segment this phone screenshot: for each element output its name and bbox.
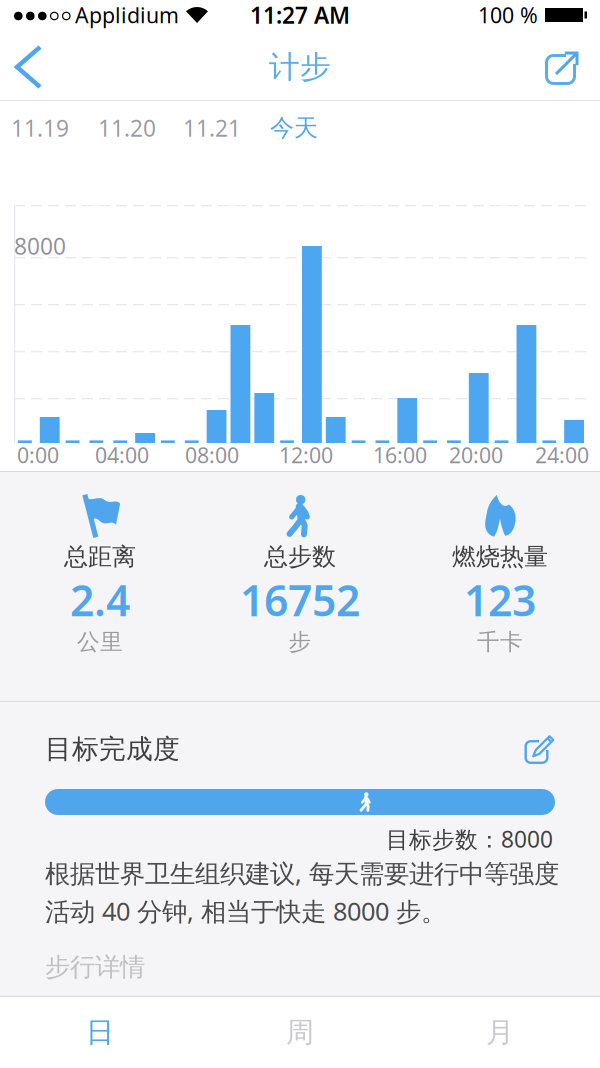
staticText: 总距离	[64, 542, 136, 571]
staticText: 公里	[77, 628, 123, 656]
staticText: 活动 40 分钟, 相当于快走 8000 步。	[45, 894, 446, 928]
button[interactable]: 月	[400, 997, 600, 1068]
button[interactable]: 11.20	[98, 107, 156, 149]
staticText: 千卡	[477, 628, 523, 656]
staticText: 16752	[240, 571, 360, 628]
button[interactable]: 周	[200, 997, 400, 1068]
button[interactable]: Back	[0, 34, 40, 100]
button[interactable]: 今天	[270, 107, 318, 149]
staticText: 根据世界卫生组织建议, 每天需要进行中等强度	[45, 856, 559, 890]
button[interactable]: Edit goal	[523, 731, 559, 765]
staticText: 计步	[269, 48, 331, 86]
staticText: 8000	[14, 231, 66, 261]
staticText: 日	[86, 1015, 114, 1050]
staticText: 12:00	[279, 441, 333, 469]
staticText: 目标完成度	[45, 733, 180, 765]
staticText: 08:00	[185, 441, 239, 469]
staticText: 123	[464, 571, 536, 628]
staticText: 总步数	[264, 542, 336, 571]
staticText: Applidium	[75, 1, 179, 29]
button[interactable]: 11.19	[11, 107, 69, 149]
staticText: 04:00	[95, 441, 149, 469]
button[interactable]: 11.21	[183, 107, 241, 149]
staticText: 11.19	[11, 113, 69, 143]
staticText: 步	[288, 628, 311, 656]
staticText: 16:00	[373, 441, 427, 469]
staticText: 11.20	[98, 113, 156, 143]
staticText: 周	[286, 1015, 314, 1050]
staticText: 11:27 AM	[250, 0, 350, 30]
staticText: 20:00	[449, 441, 503, 469]
button[interactable]: Share	[545, 41, 600, 93]
staticText: 0:00	[17, 441, 59, 469]
button[interactable]: 日	[0, 997, 200, 1068]
staticText: 月	[486, 1015, 514, 1050]
staticText: 目标步数：8000	[386, 824, 553, 854]
staticText: 11.21	[183, 113, 241, 143]
staticText: 步行详情	[45, 951, 145, 982]
staticText: 燃烧热量	[452, 542, 548, 571]
staticText: 2.4	[70, 571, 130, 628]
staticText: 100 %	[478, 1, 538, 29]
staticText: 24:00	[535, 441, 589, 469]
staticText: 今天	[270, 113, 318, 143]
